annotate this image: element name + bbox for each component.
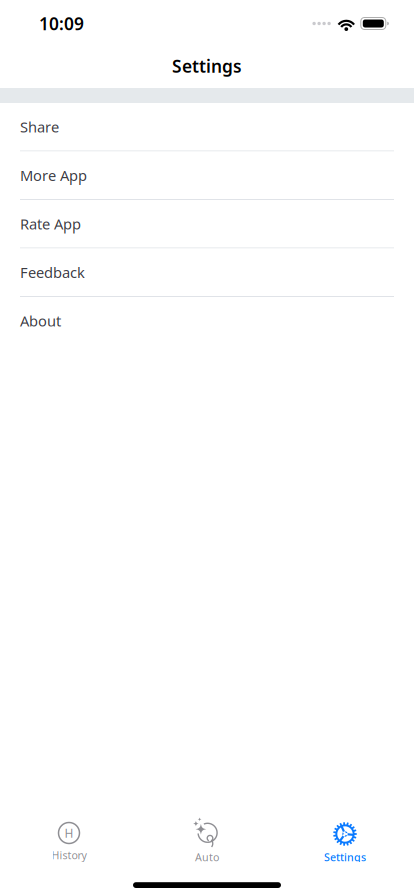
button[interactable]: Settings	[276, 813, 414, 862]
staticText: 10:09	[39, 12, 84, 35]
button[interactable]: More App	[0, 151, 414, 200]
button[interactable]: H	[0, 813, 138, 862]
button[interactable]: About	[0, 297, 414, 345]
staticText: Share	[20, 117, 59, 136]
staticText: Auto	[195, 850, 219, 864]
staticText: History	[51, 848, 86, 862]
staticText: Feedback	[20, 262, 85, 282]
button[interactable]: Share	[0, 103, 414, 151]
button[interactable]: Rate App	[0, 200, 414, 248]
staticText: About	[20, 311, 61, 330]
button[interactable]: Auto	[138, 813, 276, 862]
staticText: More App	[20, 165, 87, 185]
staticText: Settings	[324, 850, 366, 864]
button[interactable]: Feedback	[0, 248, 414, 297]
staticText: Rate App	[20, 214, 81, 233]
staticText: Settings	[172, 54, 242, 77]
staticText: H	[64, 825, 73, 841]
